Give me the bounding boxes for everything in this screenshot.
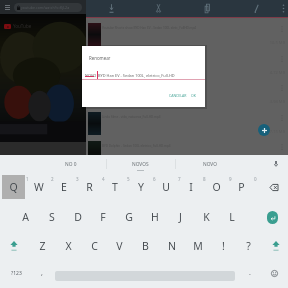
- button[interactable]: NO 0: [36, 155, 105, 173]
- button[interactable]: H: [143, 205, 166, 229]
- button[interactable]: Voice input: [266, 155, 286, 173]
- staticText: VID-20240518-WA0012_HD.mp4: [102, 85, 278, 89]
- button[interactable]: New folder: [258, 124, 270, 136]
- button[interactable]: Z: [31, 234, 54, 258]
- staticText: CANCELAR: [169, 93, 187, 98]
- button[interactable]: C: [83, 234, 106, 258]
- button[interactable]: NOVOS: [106, 155, 175, 173]
- staticText: ?: [246, 239, 251, 253]
- staticText: F: [100, 210, 106, 224]
- button[interactable]: ?123: [3, 261, 29, 285]
- button[interactable]: M: [186, 234, 209, 258]
- staticText: Renomear: [89, 55, 111, 61]
- button[interactable]: R: [78, 175, 101, 199]
- button[interactable]: OK: [190, 91, 197, 100]
- staticText: YouTube: [13, 23, 32, 29]
- button[interactable]: D: [66, 205, 89, 229]
- staticText: NOVO: [203, 161, 217, 168]
- staticText: J: [179, 210, 182, 224]
- button[interactable]: F: [91, 205, 114, 229]
- button[interactable]: Rename: [248, 0, 264, 17]
- staticText: 4: [102, 176, 105, 182]
- button[interactable]: U: [154, 175, 177, 199]
- staticText: 8: [203, 176, 206, 182]
- button[interactable]: WhatsApp Video 2024-05-19 at 19.22.41.mp…: [86, 48, 288, 78]
- button[interactable]: Emoji: [263, 261, 286, 285]
- button[interactable]: A: [14, 205, 37, 229]
- staticText: V: [116, 239, 123, 253]
- button[interactable]: Enter: [267, 211, 278, 224]
- button[interactable]: Shift: [2, 234, 25, 258]
- button[interactable]: O: [205, 175, 228, 199]
- staticText: Q: [9, 180, 18, 194]
- button[interactable]: Q: [2, 175, 25, 199]
- button[interactable]: S: [40, 205, 63, 229]
- staticText: I: [189, 180, 193, 194]
- staticText: X: [65, 239, 72, 253]
- button[interactable]: E: [52, 175, 75, 199]
- staticText: 9: [229, 176, 232, 182]
- staticText: W: [34, 180, 44, 194]
- button[interactable]: G: [117, 205, 140, 229]
- button[interactable]: Lindo filme - vida, natureza_Full-HD.mp4: [86, 107, 288, 137]
- button[interactable]: Menu: [1, 0, 13, 14]
- button[interactable]: N: [160, 234, 183, 258]
- staticText: 3: [76, 176, 79, 182]
- button[interactable]: Download: [103, 0, 119, 17]
- button[interactable]: ?: [237, 234, 260, 258]
- staticText: N: [168, 239, 176, 253]
- button[interactable]: More options: [275, 0, 288, 17]
- staticText: BYD Han EV - Sedan 100L, eletrico_Full-H…: [98, 73, 175, 78]
- staticText: WhatsApp Video 2024-05-19 at 19.22.41.mp…: [102, 56, 278, 60]
- button[interactable]: L: [220, 205, 243, 229]
- button[interactable]: I: [179, 175, 202, 199]
- button[interactable]: Cut: [150, 0, 166, 17]
- button[interactable]: Shift: [264, 234, 287, 258]
- staticText: Z: [39, 239, 46, 253]
- button[interactable]: W: [27, 175, 50, 199]
- staticText: 7: [178, 176, 181, 182]
- staticText: D: [74, 210, 82, 224]
- staticText: P: [238, 180, 245, 194]
- button[interactable]: youtube.com/watch?v=KjL2a: [14, 3, 82, 12]
- staticText: NOVO: [85, 73, 97, 78]
- button[interactable]: Y: [129, 175, 152, 199]
- staticText: ?123: [11, 270, 22, 277]
- button[interactable]: X: [57, 234, 80, 258]
- staticText: S: [49, 210, 55, 224]
- button[interactable]: Youtube Shorts show BYD Han EV - Sedan 1…: [86, 18, 288, 48]
- button[interactable]: ,: [30, 261, 53, 285]
- staticText: 7.15 MB: [252, 129, 285, 134]
- staticText: T: [112, 180, 118, 194]
- staticText: !: [222, 239, 225, 253]
- button[interactable]: T: [103, 175, 126, 199]
- staticText: 1: [26, 176, 29, 182]
- staticText: 5: [127, 176, 130, 182]
- staticText: C: [91, 239, 98, 253]
- staticText: NOVOS: [132, 161, 149, 168]
- button[interactable]: !: [212, 234, 235, 258]
- button[interactable]: BYD Dolphin - Sedan 100L eletrico_Full-H…: [86, 136, 288, 166]
- button[interactable]: NOVO: [175, 155, 244, 173]
- button[interactable]: V: [108, 234, 131, 258]
- button[interactable]: VID-20240518-WA0012_HD.mp4: [86, 77, 288, 107]
- button[interactable]: Backspace: [261, 175, 287, 199]
- button[interactable]: P: [230, 175, 253, 199]
- button[interactable]: J: [169, 205, 192, 229]
- staticText: 6: [153, 176, 156, 182]
- button[interactable]: Copy: [199, 0, 215, 17]
- button[interactable]: K: [195, 205, 218, 229]
- staticText: E: [61, 180, 67, 194]
- staticText: O: [212, 180, 221, 194]
- button[interactable]: CANCELAR: [168, 91, 188, 100]
- button[interactable]: B: [134, 234, 157, 258]
